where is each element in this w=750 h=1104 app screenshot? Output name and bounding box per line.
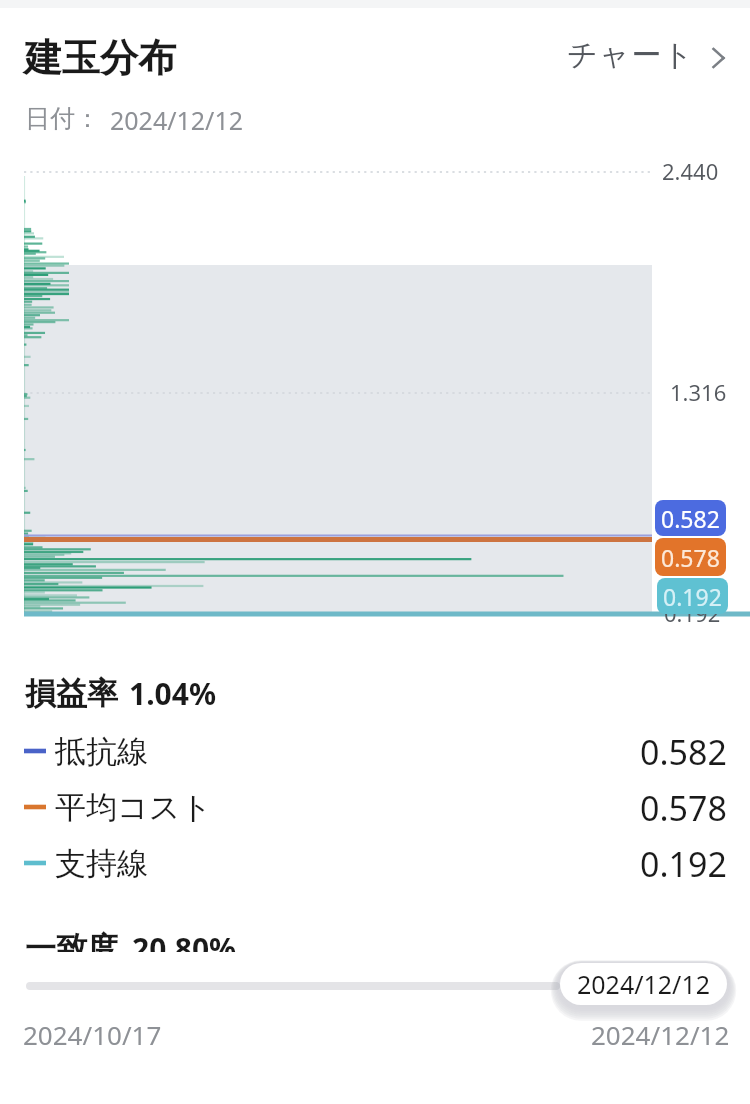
staticText: 2024/12/12 bbox=[591, 1017, 730, 1052]
button[interactable]: 2024/12/12 bbox=[560, 963, 727, 1005]
staticText: 0.582 bbox=[661, 503, 720, 534]
staticText: 0.578 bbox=[640, 785, 727, 829]
staticText: 2024/12/12 bbox=[110, 103, 244, 137]
staticText: 0.582 bbox=[640, 729, 727, 773]
staticText: 1.316 bbox=[670, 377, 727, 407]
staticText: 0.192 bbox=[664, 598, 721, 628]
button[interactable]: 抵抗線 bbox=[0, 729, 750, 773]
staticText: 平均コスト bbox=[55, 788, 213, 827]
staticText: 日付： bbox=[25, 103, 100, 134]
staticText: 2024/10/17 bbox=[23, 1017, 162, 1052]
staticText: 損益率 bbox=[25, 674, 118, 713]
button[interactable]: チャート bbox=[567, 36, 725, 74]
staticText: 1.04% bbox=[129, 673, 216, 714]
button[interactable]: 平均コスト bbox=[0, 785, 750, 829]
staticText: 20.80% bbox=[132, 928, 237, 969]
staticText: 建玉分布 bbox=[24, 34, 176, 82]
button[interactable]: 0.578 bbox=[655, 538, 726, 576]
staticText: 支持線 bbox=[55, 844, 148, 883]
staticText: 0.578 bbox=[661, 542, 720, 573]
staticText: 一致度 bbox=[25, 929, 118, 968]
staticText: 0.192 bbox=[663, 581, 722, 612]
staticText: 0.192 bbox=[640, 841, 727, 885]
button[interactable]: 0.192 bbox=[657, 578, 728, 614]
other: Open chart bbox=[712, 46, 725, 70]
staticText: 抵抗線 bbox=[55, 732, 148, 771]
staticText: チャート bbox=[567, 36, 695, 74]
button[interactable]: 支持線 bbox=[0, 841, 750, 885]
staticText: 2024/12/12 bbox=[577, 967, 711, 1001]
staticText: 2.440 bbox=[662, 156, 719, 186]
button[interactable]: 0.582 bbox=[655, 500, 726, 536]
